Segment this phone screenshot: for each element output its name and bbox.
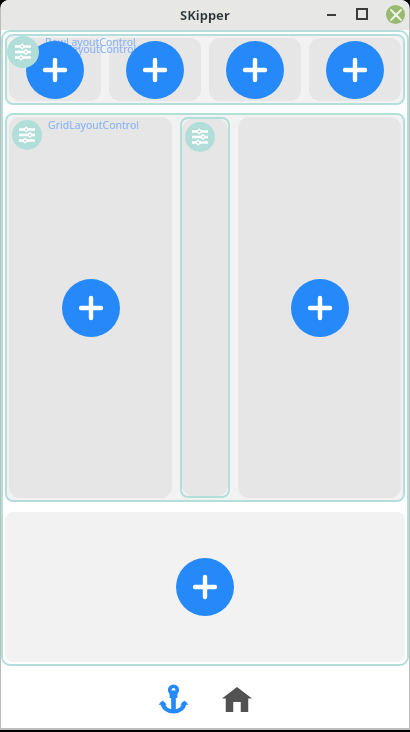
button[interactable]: Add xyxy=(226,41,284,99)
button[interactable] xyxy=(9,38,101,101)
button[interactable]: Add xyxy=(326,41,384,99)
button[interactable]: Add xyxy=(238,117,401,498)
button[interactable]: Tune xyxy=(185,122,215,152)
button[interactable]: Minimize xyxy=(319,3,343,27)
button[interactable] xyxy=(109,38,201,101)
staticText: RowLayoutControl xyxy=(45,36,136,49)
button[interactable]: Home xyxy=(213,675,261,723)
staticText: GridLayoutControl xyxy=(48,118,139,132)
button[interactable]: Add xyxy=(9,117,172,498)
button[interactable]: Maximize xyxy=(350,2,374,26)
button[interactable]: Add xyxy=(62,279,120,337)
button[interactable]: Tune xyxy=(7,36,39,68)
button[interactable] xyxy=(209,38,301,101)
button[interactable]: Close xyxy=(386,5,405,24)
button[interactable]: Add xyxy=(126,41,184,99)
button[interactable]: Add xyxy=(26,41,84,99)
button[interactable]: Add xyxy=(5,512,405,662)
staticText: ColumnLayoutControl xyxy=(28,42,137,56)
button[interactable]: Tune xyxy=(12,120,42,150)
button[interactable]: Anchor xyxy=(149,675,197,723)
staticText: SKipper xyxy=(180,6,230,24)
button[interactable] xyxy=(309,38,401,101)
button[interactable]: Tune xyxy=(182,119,228,496)
button[interactable]: Add xyxy=(176,558,234,616)
button[interactable]: Add xyxy=(291,279,349,337)
